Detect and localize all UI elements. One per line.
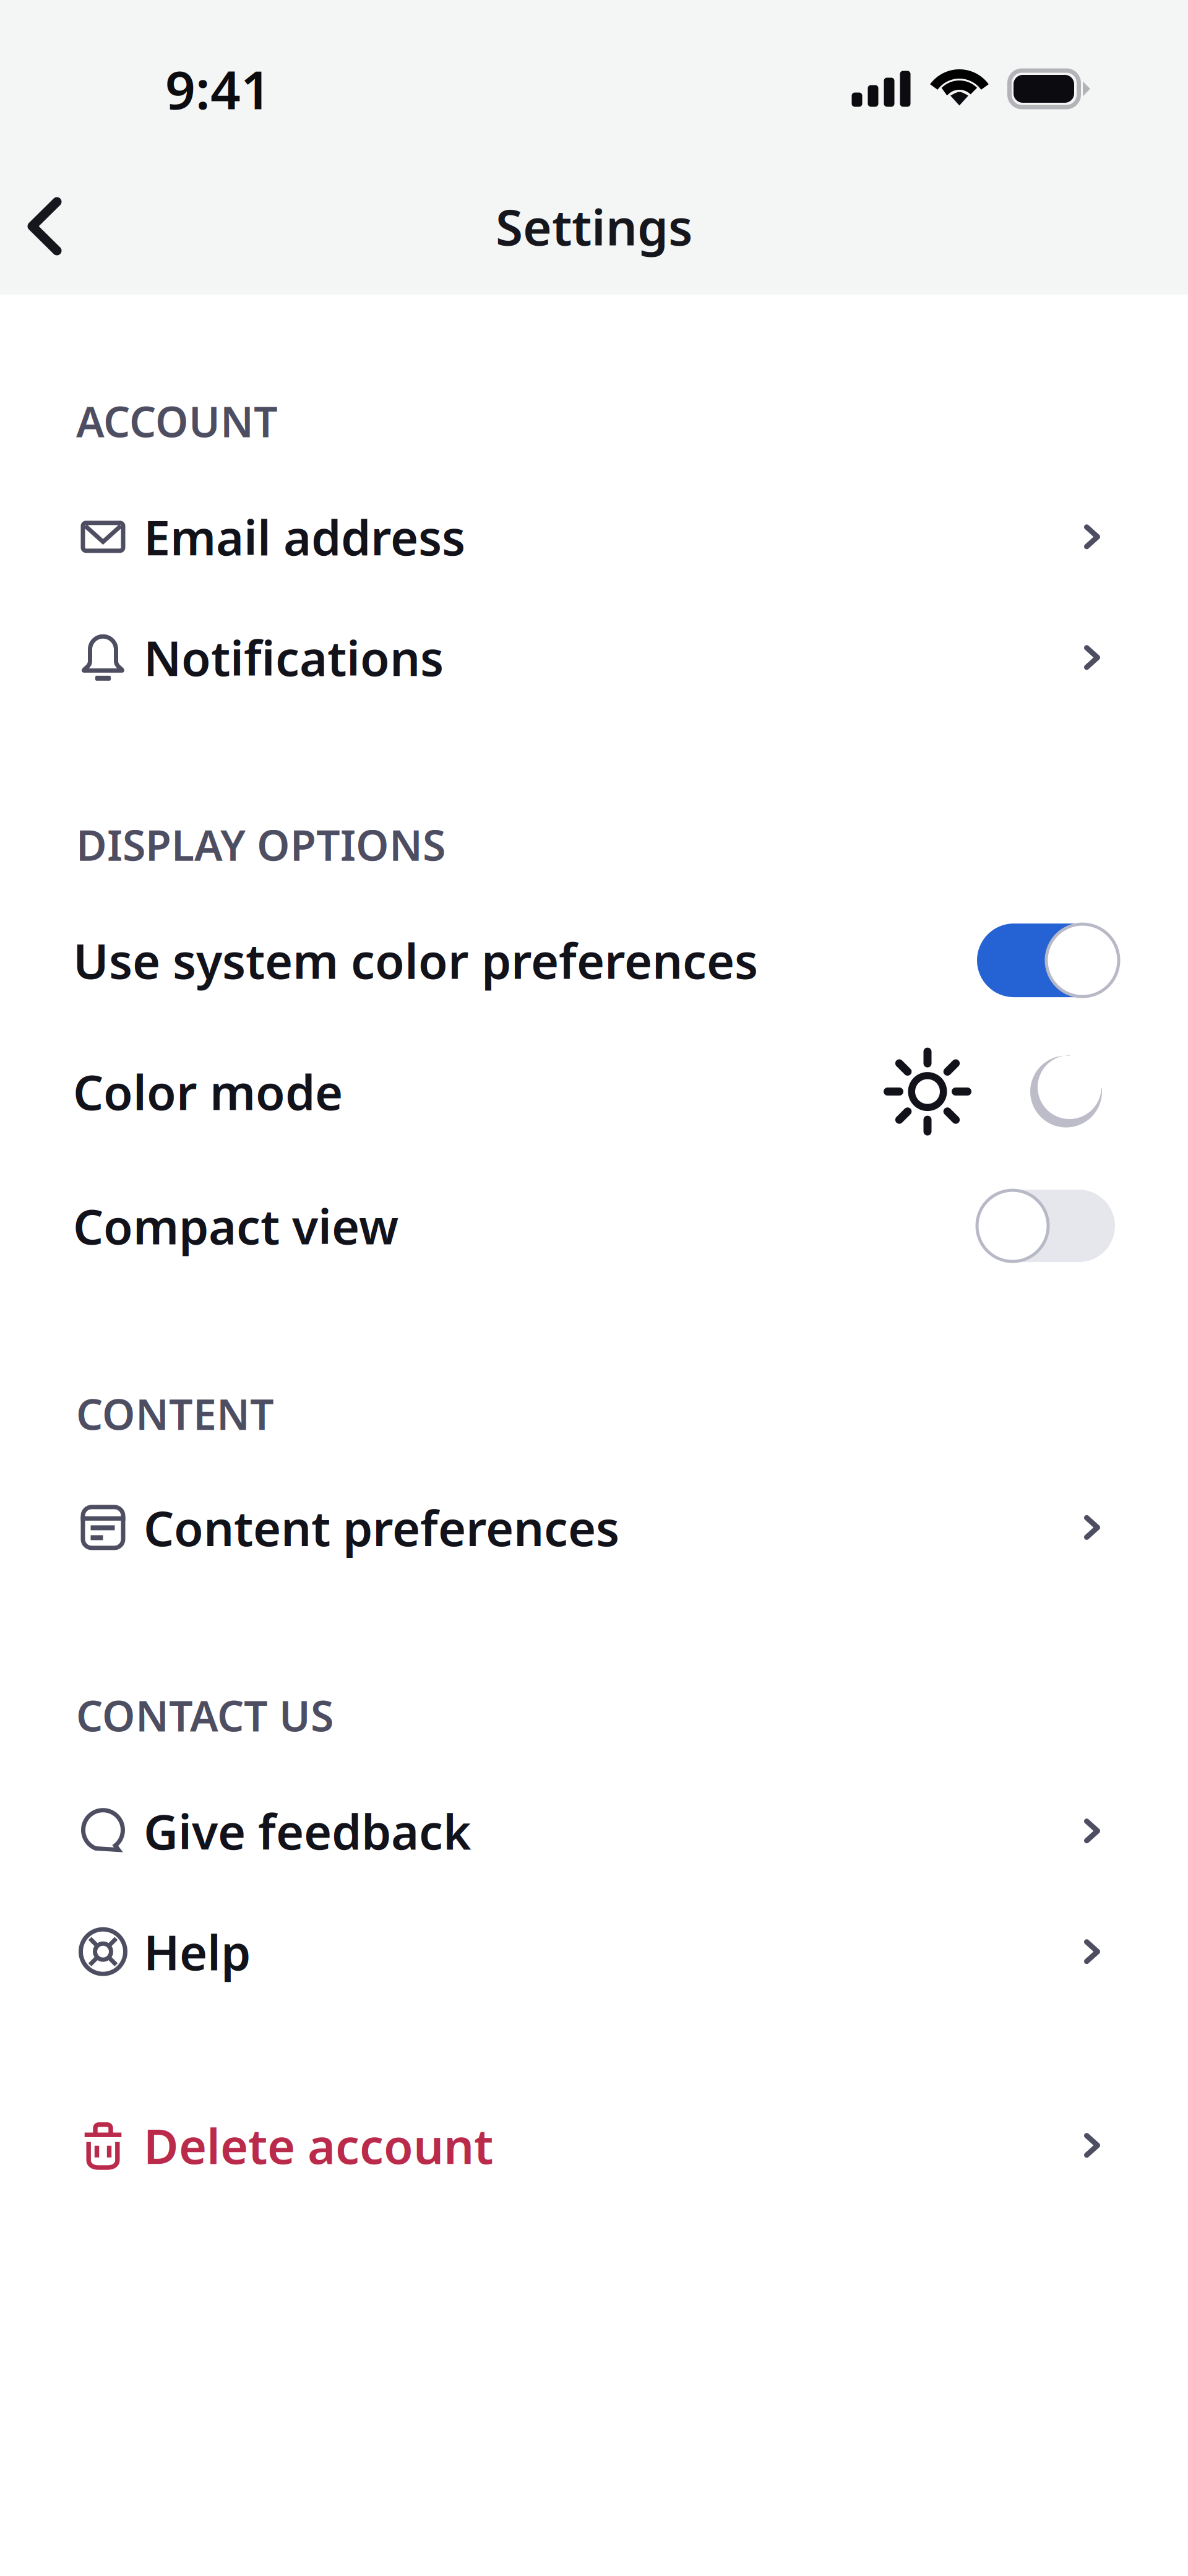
staticText: CONTENT	[76, 1386, 274, 1441]
button[interactable]: Back	[0, 180, 61, 273]
button[interactable]: Use system color preferences	[0, 914, 1188, 1007]
button[interactable]: Light mode	[883, 1047, 972, 1136]
button[interactable]: Notifications	[0, 620, 1188, 695]
button[interactable]: Compact view	[0, 1179, 1188, 1272]
staticText: Delete account	[144, 2114, 493, 2177]
button[interactable]: Email address	[0, 500, 1188, 574]
staticText: CONTACT US	[76, 1687, 334, 1743]
staticText: Color mode	[73, 1060, 343, 1123]
staticText: Email address	[144, 505, 465, 569]
staticText: Settings	[496, 193, 692, 259]
staticText: 9:41	[165, 54, 271, 124]
button[interactable]: Give feedback	[0, 1794, 1188, 1868]
button[interactable]: Dark mode	[1030, 1056, 1102, 1127]
staticText: ACCOUNT	[76, 393, 278, 449]
button[interactable]: Content preferences	[0, 1490, 1188, 1565]
staticText: DISPLAY OPTIONS	[76, 817, 445, 872]
staticText: Compact view	[73, 1194, 398, 1258]
staticText: Give feedback	[144, 1799, 471, 1863]
staticText: Help	[144, 1920, 251, 1983]
button[interactable]: Help	[0, 1914, 1188, 1989]
staticText: Content preferences	[144, 1496, 619, 1559]
staticText: Notifications	[144, 626, 444, 689]
button[interactable]: Delete account	[0, 2108, 1188, 2182]
staticText: Use system color preferences	[73, 929, 758, 992]
